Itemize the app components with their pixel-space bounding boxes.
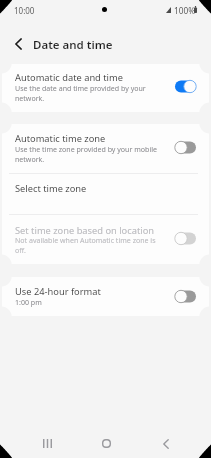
staticText: 100% bbox=[174, 5, 196, 16]
button[interactable] bbox=[2, 214, 209, 264]
staticText: Use the time zone provided by your mobil… bbox=[15, 144, 158, 164]
button[interactable]: Home bbox=[84, 428, 129, 458]
button[interactable]: Back bbox=[6, 32, 30, 56]
staticText: Use the date and time provided by your n… bbox=[15, 83, 146, 103]
button[interactable] bbox=[2, 64, 209, 112]
button[interactable]: Back bbox=[143, 428, 187, 458]
button[interactable] bbox=[2, 277, 209, 316]
staticText: Use 24-hour format bbox=[15, 285, 101, 298]
other: Toggle bbox=[175, 232, 196, 245]
other: Toggle bbox=[175, 141, 196, 154]
staticText: 10:00 bbox=[14, 5, 35, 16]
button[interactable]: Recents bbox=[25, 428, 69, 458]
staticText: Date and time bbox=[33, 37, 113, 53]
staticText: Automatic time zone bbox=[15, 132, 106, 145]
other: Toggle bbox=[175, 80, 196, 93]
button[interactable] bbox=[2, 173, 209, 213]
other: Toggle bbox=[175, 290, 196, 303]
staticText: Select time zone bbox=[15, 182, 87, 195]
staticText: Not available when Automatic time zone i… bbox=[15, 235, 156, 255]
staticText: 1:00 pm bbox=[15, 297, 42, 307]
button[interactable] bbox=[2, 124, 209, 173]
staticText: Automatic date and time bbox=[15, 71, 123, 84]
staticText: Set time zone based on location bbox=[15, 224, 155, 237]
